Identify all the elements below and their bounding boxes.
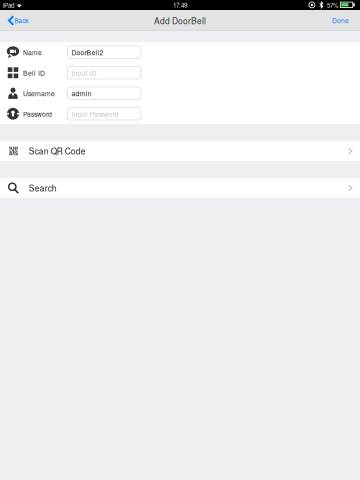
button[interactable]: Scan QR Code [0,141,360,161]
staticText: iPad [3,1,14,9]
button[interactable]: Done [324,10,360,31]
staticText: Input ID [71,68,96,78]
staticText: 57% [327,1,338,9]
staticText: admin [71,88,91,98]
staticText: Scan QR Code [29,145,86,157]
staticText: 17:49 [173,1,187,9]
staticText: Back [14,16,28,25]
button[interactable]: Back [0,10,36,31]
staticText: Username [23,88,55,98]
staticText: Search [29,182,57,194]
staticText: Name [23,47,42,57]
staticText: Done [332,16,349,25]
staticText: DoorBell2 [71,47,103,57]
staticText: Input Password [71,109,118,119]
button[interactable]: Search [0,178,360,198]
staticText: Password [23,109,52,119]
staticText: Add DoorBell [154,14,206,26]
staticText: Bell ID [23,68,45,78]
